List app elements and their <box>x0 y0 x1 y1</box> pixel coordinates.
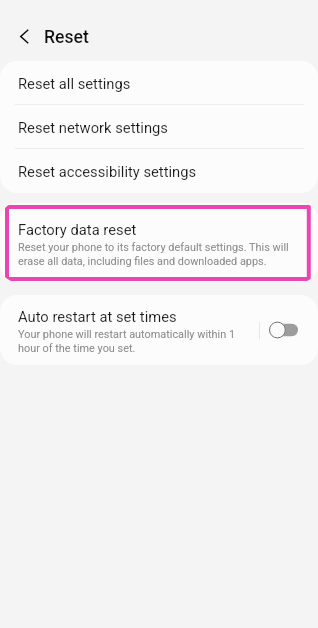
staticText: Reset all settings <box>18 74 131 93</box>
staticText: Reset <box>44 27 89 48</box>
staticText: Factory data reset <box>18 220 137 239</box>
button[interactable]: Reset network settings <box>0 105 318 149</box>
button[interactable]: Factory data reset <box>0 203 318 282</box>
staticText: Reset your phone to its factory default … <box>18 240 301 268</box>
button[interactable]: Reset all settings <box>0 61 318 105</box>
button[interactable]: Reset accessibility settings <box>0 149 318 193</box>
button[interactable]: Auto restart at set times <box>0 305 259 355</box>
staticText: Auto restart at set times <box>18 307 177 326</box>
button[interactable]: Auto restart at set times, off <box>260 295 318 365</box>
staticText: Reset network settings <box>18 118 168 137</box>
staticText: Reset accessibility settings <box>18 162 197 181</box>
staticText: Your phone will restart automatically wi… <box>18 327 250 355</box>
button[interactable]: Back <box>6 18 42 54</box>
